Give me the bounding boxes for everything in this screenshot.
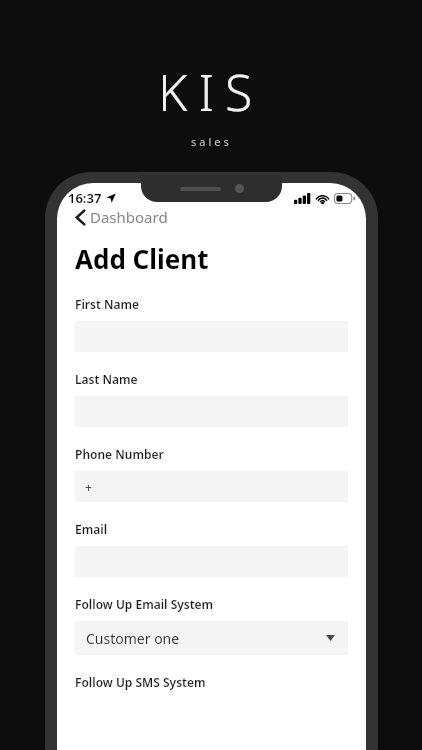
staticText: Dashboard [90,207,168,227]
staticText: 16:37 [68,189,102,207]
button[interactable]: + [75,471,348,502]
staticText: KIS [158,58,264,126]
staticText: Phone Number [75,446,164,462]
staticText: + [85,479,92,495]
staticText: Add Client [75,241,209,276]
staticText: Customer one [86,629,180,648]
staticText: sales [191,134,232,149]
staticText: First Name [75,296,140,312]
staticText: Follow Up Email System [75,596,214,612]
button[interactable]: Customer one [75,621,348,655]
other: Open dropdown [323,631,337,645]
staticText: Last Name [75,371,138,387]
button[interactable]: Dashboard [75,205,169,229]
staticText: Follow Up SMS System [75,674,206,690]
staticText: Email [75,521,108,537]
